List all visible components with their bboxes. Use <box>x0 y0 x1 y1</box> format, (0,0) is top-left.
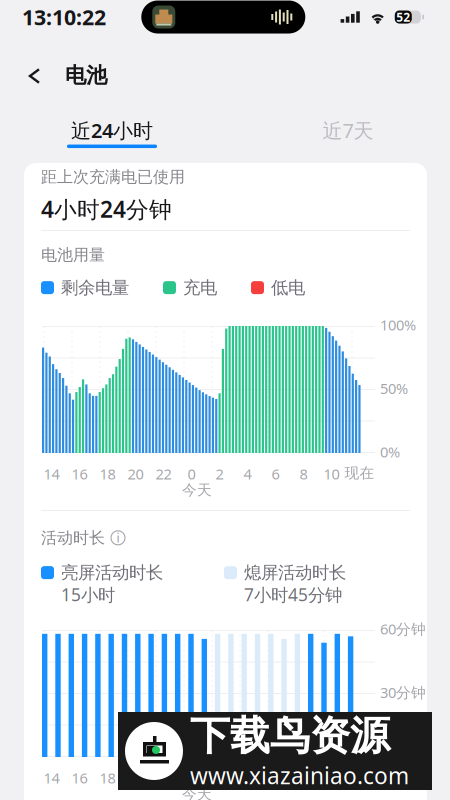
staticText: www.xiazainiao.com <box>190 760 409 791</box>
staticText: 15小时 <box>61 583 115 606</box>
staticText: 8 <box>299 464 307 483</box>
staticText: 近24小时 <box>71 117 153 144</box>
staticText: 熄屏活动时长 <box>244 562 346 583</box>
staticText: 14 <box>43 768 59 787</box>
staticText: 6 <box>271 464 279 483</box>
staticText: 16 <box>71 464 87 483</box>
staticText: 充电 <box>183 277 217 298</box>
staticText: 13:10:22 <box>22 3 106 31</box>
staticText: 8 <box>299 768 307 787</box>
staticText: 4 <box>243 464 251 483</box>
staticText: 14 <box>43 464 59 483</box>
staticText: 6 <box>271 768 279 787</box>
staticText: 7小时45分钟 <box>244 583 342 606</box>
staticText: 16 <box>71 768 87 787</box>
staticText: 2 <box>215 768 223 787</box>
staticText: 0 <box>187 768 195 787</box>
staticText: 18 <box>99 464 115 483</box>
staticText: 18 <box>99 768 115 787</box>
staticText: 22 <box>155 768 171 787</box>
staticText: 4小时24分钟 <box>41 194 172 224</box>
staticText: 亮屏活动时长 <box>61 562 163 583</box>
button[interactable]: 电池 <box>65 41 113 97</box>
staticText: i <box>116 530 119 546</box>
staticText: 30分钟 <box>380 682 426 702</box>
staticText: 52 <box>396 9 410 25</box>
staticText: 今天 <box>182 785 212 800</box>
button[interactable]: 返回 <box>0 45 65 93</box>
button[interactable]: 近7天 <box>292 92 404 163</box>
staticText: 60分钟 <box>380 619 426 638</box>
staticText: 近7天 <box>322 117 373 144</box>
staticText: 剩余电量 <box>61 277 129 298</box>
staticText: 低电 <box>271 277 305 298</box>
staticText: 20 <box>127 464 143 483</box>
staticText: 2 <box>215 464 223 483</box>
staticText: 4 <box>243 768 251 787</box>
staticText: 电池 <box>65 62 107 89</box>
staticText: 10 <box>323 464 339 483</box>
staticText: 50% <box>380 378 408 398</box>
staticText: 距上次充满电已使用 <box>41 167 185 187</box>
staticText: 下载鸟资源 <box>190 711 390 760</box>
button[interactable]: 近24小时 <box>56 92 168 163</box>
staticText: 0% <box>380 442 400 461</box>
staticText: 0 <box>187 464 195 483</box>
staticText: 活动时长 <box>41 528 105 548</box>
staticText: 现在 <box>344 768 374 786</box>
staticText: 10 <box>323 768 339 787</box>
staticText: 100% <box>380 315 416 334</box>
staticText: 20 <box>127 768 143 787</box>
staticText: 电池用量 <box>41 245 105 265</box>
staticText: 现在 <box>344 464 374 482</box>
staticText: 今天 <box>182 481 212 499</box>
staticText: 22 <box>155 464 171 483</box>
